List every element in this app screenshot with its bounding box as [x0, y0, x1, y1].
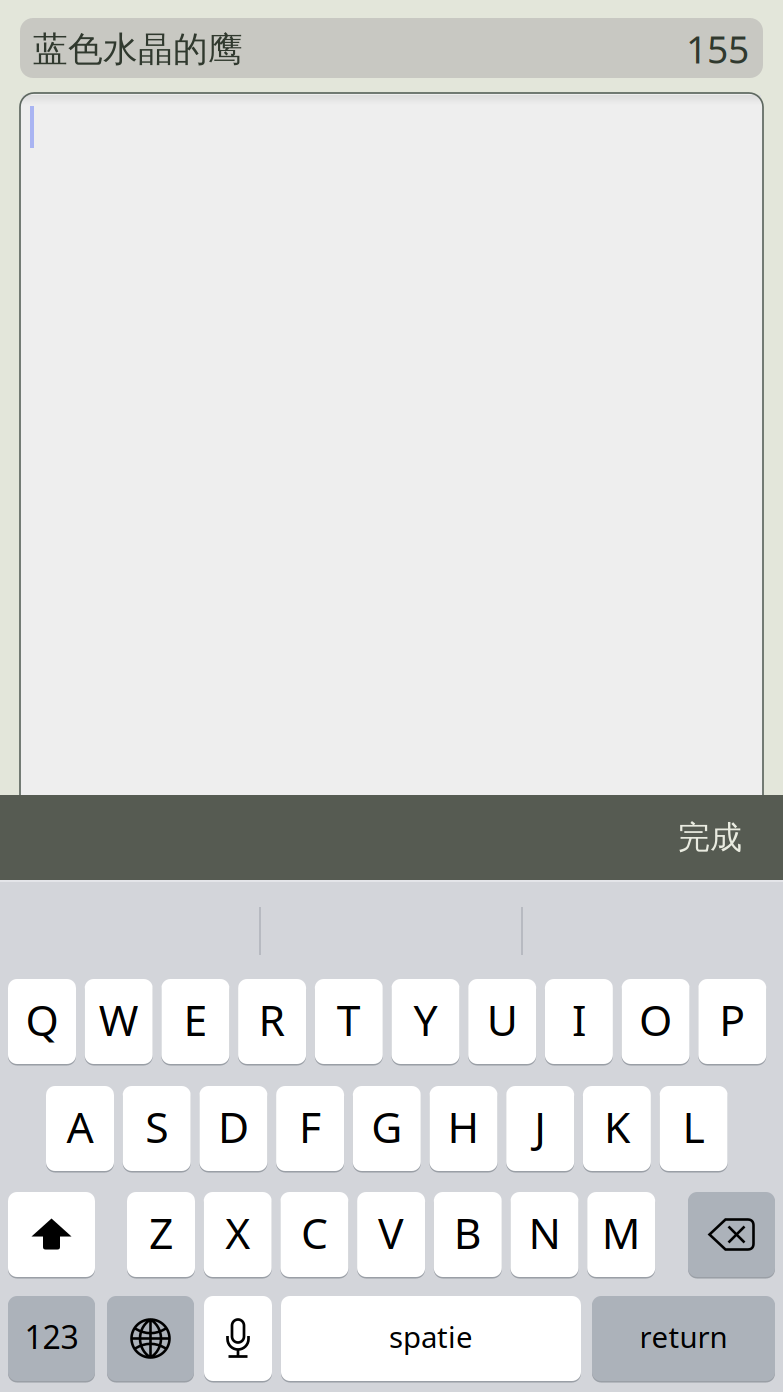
staticText: Y — [413, 991, 437, 1048]
staticText: 155 — [686, 24, 749, 74]
staticText: 蓝色水晶的鹰 — [33, 28, 243, 71]
staticText: L — [683, 1098, 705, 1155]
button[interactable]: spatie — [0, 880, 300, 965]
staticText: N — [528, 1204, 560, 1261]
staticText: S — [145, 1098, 168, 1155]
staticText: O — [639, 991, 672, 1048]
staticText: X — [225, 1204, 250, 1261]
staticText: T — [337, 991, 361, 1048]
staticText: Q — [25, 991, 58, 1048]
staticText: H — [447, 1098, 479, 1155]
staticText: V — [378, 1204, 404, 1261]
staticText: W — [99, 991, 139, 1048]
staticText: F — [299, 1098, 321, 1155]
staticText: M — [602, 1204, 641, 1261]
staticText: 完成 — [678, 818, 742, 857]
staticText: G — [371, 1098, 402, 1155]
button[interactable]: 蓝色水晶的鹰 — [20, 18, 763, 78]
staticText: return — [639, 1317, 727, 1356]
staticText: K — [604, 1098, 630, 1155]
staticText: A — [66, 1098, 93, 1155]
staticText: J — [534, 1098, 546, 1155]
staticText: B — [454, 1204, 482, 1261]
staticText: R — [259, 991, 286, 1048]
button[interactable]: 完成 — [678, 795, 783, 880]
staticText: E — [183, 991, 207, 1048]
staticText: I — [572, 991, 586, 1048]
staticText: P — [719, 991, 745, 1048]
staticText: D — [218, 1098, 249, 1155]
staticText: U — [487, 991, 518, 1048]
staticText: Z — [149, 1204, 173, 1261]
staticText: spatie — [389, 1317, 473, 1356]
staticText: 123 — [24, 1315, 78, 1358]
staticText: C — [301, 1204, 328, 1261]
